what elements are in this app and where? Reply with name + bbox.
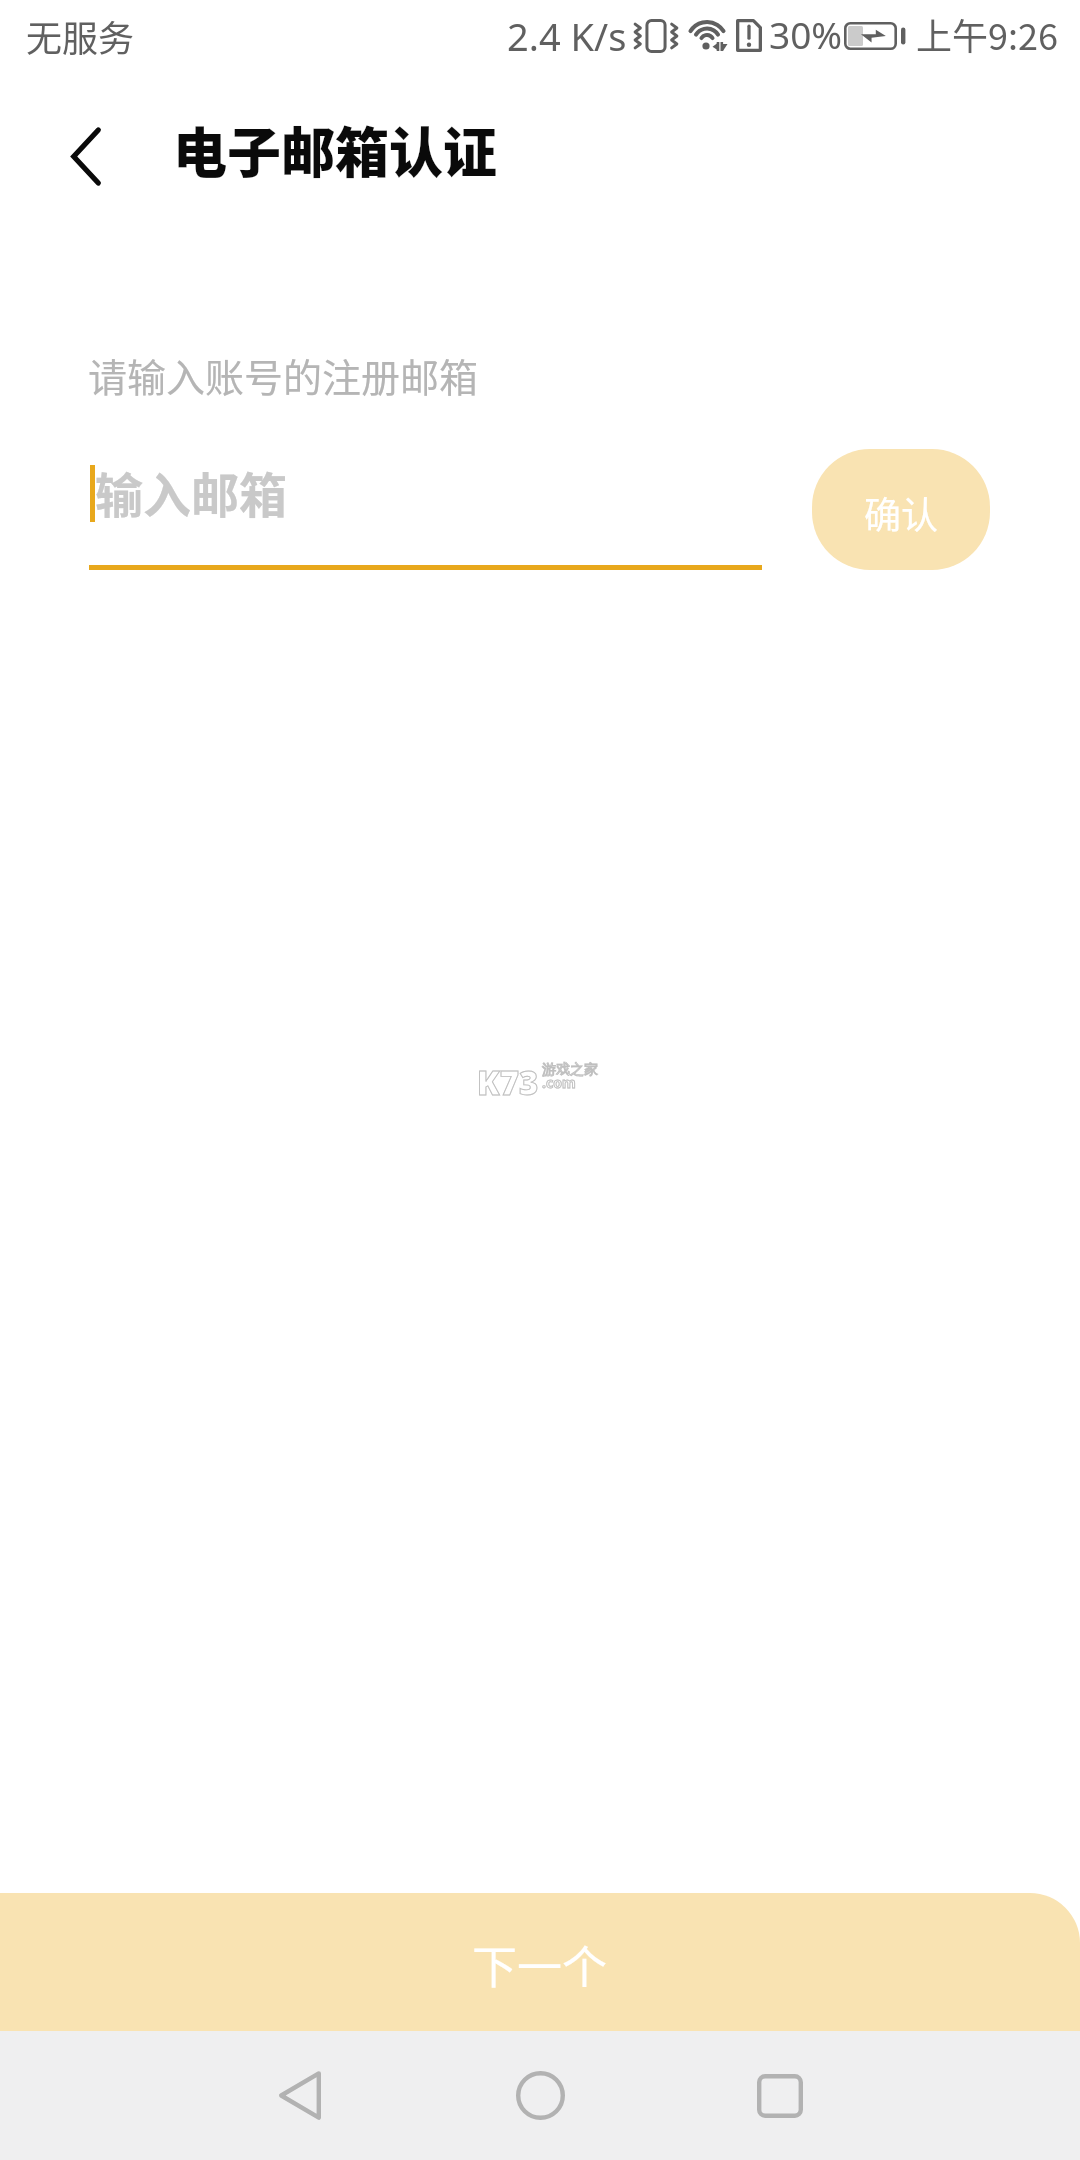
staticText: 输入邮箱 <box>95 457 288 527</box>
staticText: 下一个 <box>472 1932 608 1997</box>
staticText: 确认 <box>864 486 938 540</box>
staticText: 电子邮箱认证 <box>173 110 497 188</box>
staticText: 无服务 <box>26 10 135 62</box>
staticText: 上午9:26 <box>916 8 1058 60</box>
staticText: K73 <box>477 1060 539 1105</box>
staticText: 30% <box>769 9 843 59</box>
staticText: .com <box>542 1073 576 1092</box>
button[interactable]: 下一个 <box>0 1893 1080 2031</box>
button[interactable]: 输入邮箱 <box>89 440 762 570</box>
staticText: 请输入账号的注册邮箱 <box>88 347 479 403</box>
button[interactable]: Home <box>460 2038 620 2153</box>
button[interactable]: Back <box>222 2038 382 2153</box>
button[interactable]: 确认 <box>812 449 990 570</box>
staticText: 游戏之家 <box>542 1061 598 1079</box>
staticText: 2.4 K/s <box>507 10 627 62</box>
button[interactable]: Back <box>40 110 132 202</box>
button[interactable]: Recent apps <box>700 2038 860 2153</box>
